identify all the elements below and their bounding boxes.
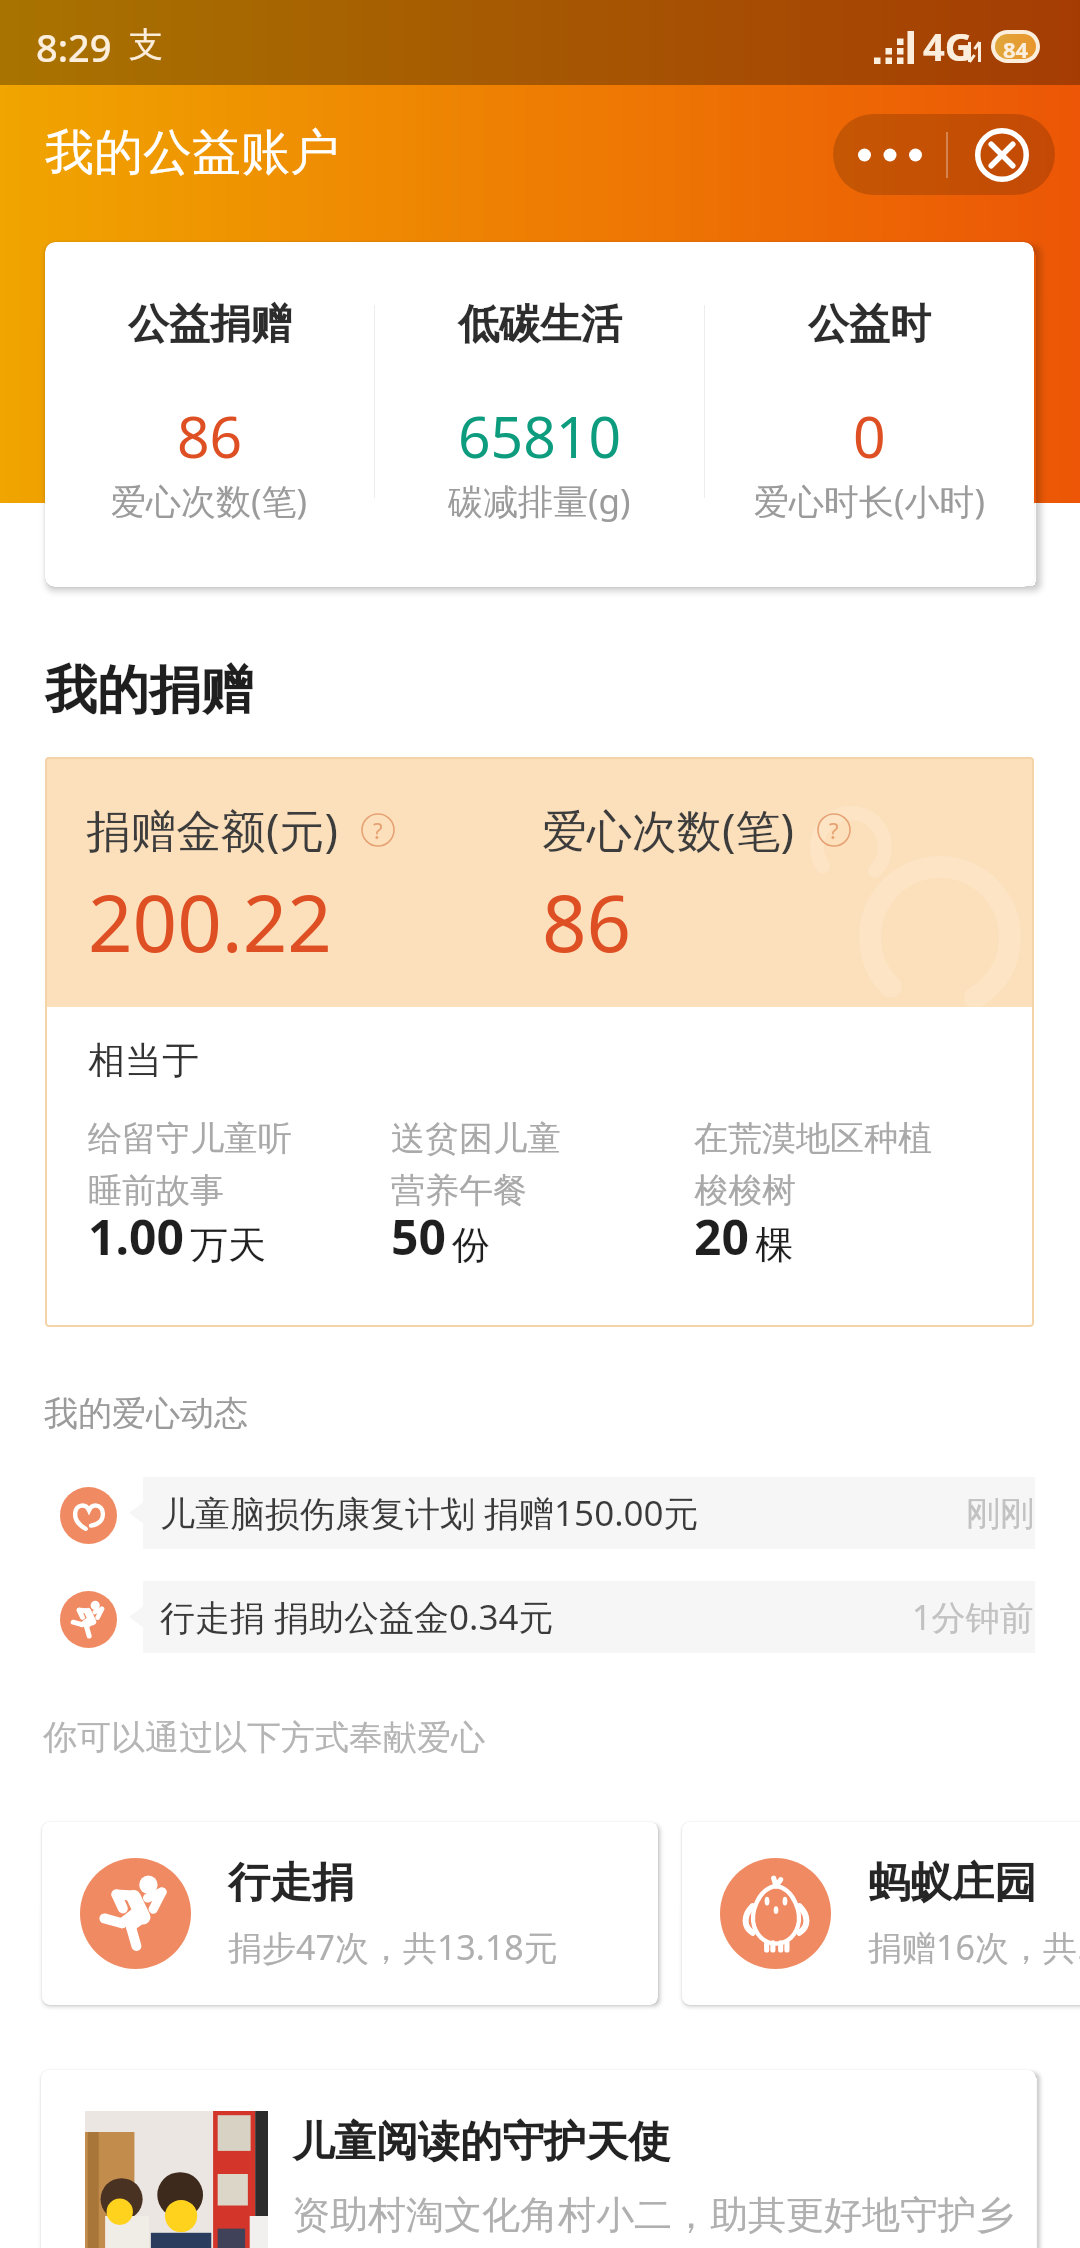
staticText: 在荒漠地区种植 梭梭树: [694, 1117, 933, 1212]
button[interactable]: 行走捐: [42, 1822, 658, 2005]
button[interactable]: About donation amount: [361, 813, 395, 847]
staticText: 份: [452, 1221, 490, 1269]
staticText: 4G: [923, 20, 973, 72]
staticText: 捐步47次，共13.18元: [228, 1924, 558, 1970]
button[interactable]: 行走捐 捐助公益金0.34元: [143, 1581, 1035, 1653]
staticText: 20: [694, 1204, 749, 1269]
staticText: 200.22: [88, 869, 332, 975]
button[interactable]: 公益时: [705, 242, 1034, 587]
staticText: 给留守儿童听 睡前故事: [88, 1117, 292, 1212]
staticText: ?: [373, 815, 383, 845]
button[interactable]: 儿童阅读的守护天使: [41, 2070, 1036, 2248]
staticText: 我的爱心动态: [44, 1392, 248, 1435]
staticText: 捐赠16次，共…: [868, 1924, 1080, 1970]
staticText: 86: [542, 869, 632, 975]
staticText: 公益捐赠: [128, 299, 292, 351]
staticText: 万天: [190, 1221, 266, 1269]
staticText: 你可以通过以下方式奉献爱心: [43, 1716, 485, 1759]
staticText: 65810: [458, 397, 622, 475]
staticText: 儿童脑损伤康复计划 捐赠150.00元: [160, 1489, 699, 1537]
button[interactable]: More options: [833, 114, 946, 195]
staticText: 低碳生活: [458, 299, 622, 351]
staticText: 捐赠金额(元): [86, 799, 339, 860]
staticText: 我的公益账户: [45, 122, 339, 184]
staticText: 儿童阅读的守护天使: [292, 2116, 670, 2169]
staticText: 蚂蚁庄园: [868, 1857, 1036, 1910]
button[interactable]: 蚂蚁庄园: [682, 1822, 1080, 2005]
staticText: 爱心次数(笔): [542, 799, 795, 860]
staticText: 1分钟前: [912, 1594, 1034, 1640]
button[interactable]: 儿童脑损伤康复计划 捐赠150.00元: [143, 1477, 1035, 1549]
staticText: 86: [177, 397, 243, 475]
button[interactable]: 公益捐赠: [45, 242, 374, 587]
staticText: 碳减排量(g): [448, 477, 631, 525]
staticText: 棵: [755, 1221, 793, 1269]
staticText: 刚刚: [966, 1492, 1034, 1535]
staticText: ?: [829, 815, 839, 845]
staticText: 支: [129, 23, 163, 66]
staticText: 爱心时长(小时): [754, 477, 986, 525]
staticText: 50: [391, 1204, 446, 1269]
staticText: 公益时: [808, 299, 931, 351]
staticText: 0: [853, 397, 886, 475]
staticText: 84: [1003, 34, 1029, 59]
staticText: 我的捐赠: [45, 658, 253, 724]
staticText: 行走捐 捐助公益金0.34元: [160, 1593, 554, 1641]
staticText: 爱心次数(笔): [111, 477, 308, 525]
staticText: 资助村淘文化角村小二，助其更好地守护乡 村孩子的阅读梦: [292, 2191, 1014, 2248]
button[interactable]: 低碳生活: [375, 242, 704, 587]
staticText: 相当于: [88, 1037, 199, 1084]
staticText: 行走捐: [228, 1857, 354, 1910]
button[interactable]: Close: [948, 114, 1055, 195]
button[interactable]: About donation count: [817, 813, 851, 847]
staticText: 8:29: [36, 21, 112, 73]
staticText: 送贫困儿童 营养午餐: [391, 1117, 561, 1212]
staticText: 1.00: [88, 1204, 184, 1269]
